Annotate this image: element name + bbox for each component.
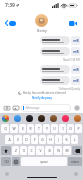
button[interactable]: Back [3,18,18,28]
staticText: Y [46,126,48,131]
button[interactable]: numbers [1,157,11,166]
button[interactable]: L [71,135,78,144]
staticText: W [12,126,16,131]
staticText: Read 7:38 PM [63,58,80,62]
button[interactable]: H [47,135,54,144]
button[interactable]: M [63,146,71,155]
button[interactable]: Y [43,124,50,133]
staticText: return [71,160,79,164]
button[interactable]: mR [40,36,80,45]
button[interactable]: Becky has notifications silenced [3,91,80,100]
staticText: mR [73,38,79,43]
staticText: mR [73,49,79,54]
staticText: D [25,137,28,142]
button[interactable]: B [45,146,53,155]
staticText: G [41,137,44,142]
button[interactable]: mR [40,76,80,85]
staticText: Notify Anyway [32,96,52,100]
button[interactable]: App [74,115,81,122]
button[interactable]: FaceTime [67,19,79,28]
button[interactable]: Emoji [12,157,20,166]
button[interactable]: shift [1,146,11,155]
staticText: S [17,137,19,142]
staticText: Z [15,148,17,153]
button[interactable]: Z [12,146,19,155]
button[interactable]: D [23,135,30,144]
button[interactable]: Photos [12,104,19,111]
button[interactable]: App [38,115,45,122]
button[interactable]: J [55,135,62,144]
button[interactable]: Microphone [74,172,78,176]
button[interactable]: R [27,124,34,133]
button[interactable]: mR [40,47,80,56]
button[interactable]: X [20,146,27,155]
staticText: Q [4,126,7,131]
button[interactable]: T [35,124,42,133]
button[interactable]: App [26,115,33,122]
staticText: 123 [4,160,9,164]
staticText: C [30,148,33,153]
staticText: X [23,148,25,153]
button[interactable]: N [54,146,62,155]
button[interactable]: Dictation [5,172,9,176]
staticText: T [38,126,40,131]
button[interactable]: P [75,124,82,133]
button[interactable]: Q [1,124,9,133]
staticText: space [40,160,48,164]
staticText: N [57,148,60,153]
button[interactable]: Camera [3,104,10,111]
staticText: U [53,126,56,131]
staticText: F [34,137,36,142]
button[interactable]: A [5,135,13,144]
button[interactable]: return [68,157,82,166]
staticText: R [29,126,32,131]
staticText: L [74,137,76,142]
button[interactable]: W [10,124,18,133]
button[interactable]: C [28,146,35,155]
staticText: I [62,126,64,131]
staticText: V [39,148,42,153]
button[interactable]: O [67,124,74,133]
button[interactable]: Audio message [73,104,80,111]
button[interactable]: S [14,135,22,144]
staticText: E [22,126,24,131]
button[interactable]: mR [40,65,80,74]
staticText: H [49,137,52,142]
staticText: M [65,148,69,153]
staticText: Becky has notifications silenced [23,91,66,95]
button[interactable]: I [59,124,66,133]
button[interactable]: F [31,135,38,144]
staticText: J [58,137,59,142]
button[interactable]: delete [72,146,82,155]
staticText: Becky [37,28,47,33]
staticText: mR [73,78,79,83]
staticText: 7:39 [5,2,15,9]
button[interactable]: App [62,115,69,122]
staticText: Delivered Quietly [59,87,80,91]
staticText: O [69,126,72,131]
staticText: P [77,126,80,131]
button[interactable]: E [19,124,26,133]
button[interactable]: K [63,135,70,144]
button[interactable]: space [21,157,67,166]
button[interactable]: App [50,115,57,122]
staticText: K [65,137,68,142]
staticText: A [8,137,11,142]
staticText: iMessage [25,106,40,110]
button[interactable]: App [2,115,9,122]
button[interactable]: G [39,135,46,144]
staticText: mR [73,67,79,72]
button[interactable]: App [14,115,21,122]
button[interactable]: V [36,146,44,155]
button[interactable]: iMessage [21,104,71,112]
staticText: B [48,148,51,153]
button[interactable]: U [51,124,58,133]
button[interactable]: Becky [35,14,48,33]
